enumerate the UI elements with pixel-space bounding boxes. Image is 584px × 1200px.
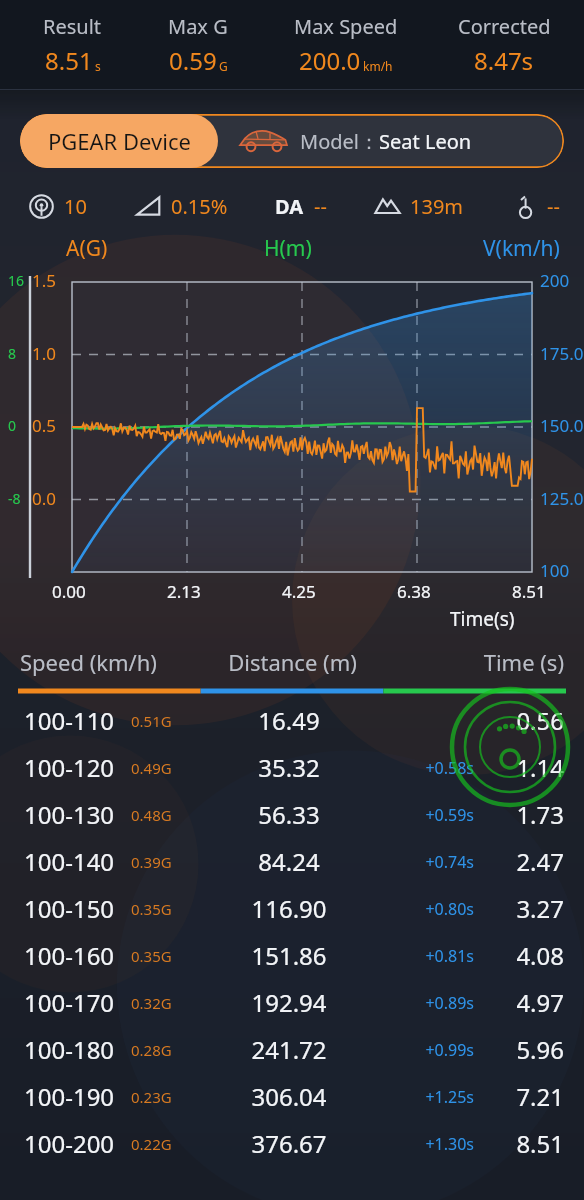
- staticText: 1.73: [490, 798, 564, 831]
- staticText: G: [219, 58, 228, 74]
- staticText: 100-200: [24, 1127, 115, 1160]
- staticText: 2.13: [167, 580, 201, 603]
- button[interactable]: Slope: [135, 193, 228, 220]
- button[interactable]: DA: [275, 193, 327, 220]
- staticText: +0.99s: [406, 1039, 474, 1061]
- staticText: 8.51: [512, 580, 546, 603]
- staticText: 139m: [410, 193, 464, 220]
- staticText: 0.23G: [131, 1087, 172, 1107]
- staticText: s: [95, 58, 101, 74]
- staticText: 125.0: [540, 487, 584, 510]
- staticText: 150.0: [540, 414, 584, 437]
- staticText: 6.38: [397, 580, 431, 603]
- staticText: 0.00: [52, 580, 86, 603]
- staticText: Max Speed: [294, 13, 398, 40]
- staticText: Time(s): [450, 606, 515, 632]
- staticText: 306.04: [226, 1080, 352, 1113]
- staticText: 0.0: [32, 487, 57, 510]
- button[interactable]: 100-200: [0, 1120, 584, 1167]
- staticText: 4.97: [490, 986, 564, 1019]
- staticText: km/h: [363, 58, 393, 74]
- button[interactable]: Max G: [137, 0, 259, 90]
- staticText: 100-110: [24, 704, 115, 737]
- staticText: 1.0: [32, 342, 57, 365]
- staticText: +1.30s: [406, 1133, 474, 1155]
- staticText: 100-120: [24, 751, 115, 784]
- button[interactable]: 100-110: [0, 697, 584, 744]
- staticText: Seat Leon: [379, 128, 472, 155]
- staticText: --: [314, 193, 327, 220]
- button[interactable]: [0, 234, 584, 629]
- staticText: 4.25: [282, 580, 316, 603]
- staticText: Time (s): [383, 647, 564, 677]
- staticText: Result: [43, 13, 102, 40]
- staticText: 0.35G: [131, 899, 172, 919]
- button[interactable]: 100-160: [0, 932, 584, 979]
- staticText: +0.80s: [406, 898, 474, 920]
- staticText: 0.48G: [131, 805, 172, 825]
- staticText: 2.47: [490, 845, 564, 878]
- button[interactable]: 100-120: [0, 744, 584, 791]
- button[interactable]: 100-130: [0, 791, 584, 838]
- staticText: [406, 710, 474, 732]
- staticText: 100-180: [24, 1033, 115, 1066]
- staticText: --: [547, 193, 560, 220]
- staticText: 1.14: [490, 751, 564, 784]
- staticText: 0.35G: [131, 946, 172, 966]
- staticText: 200.0: [299, 44, 361, 77]
- staticText: A(G): [66, 234, 108, 263]
- button[interactable]: 100-180: [0, 1026, 584, 1073]
- staticText: 100-150: [24, 892, 115, 925]
- staticText: 4.08: [490, 939, 564, 972]
- staticText: 8.47s: [474, 44, 534, 77]
- button[interactable]: Temperature: [511, 193, 560, 220]
- staticText: 100-160: [24, 939, 115, 972]
- staticText: +0.81s: [406, 945, 474, 967]
- staticText: 0.59: [169, 44, 217, 77]
- staticText: 1.5: [32, 269, 57, 292]
- button[interactable]: GPS satellites: [28, 193, 87, 220]
- staticText: V(km/h): [483, 234, 560, 263]
- staticText: 3.27: [490, 892, 564, 925]
- staticText: 192.94: [226, 986, 352, 1019]
- button[interactable]: Altitude: [374, 193, 464, 220]
- button[interactable]: Result: [8, 0, 137, 90]
- staticText: 0.22G: [131, 1134, 172, 1154]
- staticText: Max G: [168, 13, 228, 40]
- staticText: 0: [8, 416, 17, 435]
- button[interactable]: PGEAR Device: [20, 114, 218, 168]
- button[interactable]: 100-170: [0, 979, 584, 1026]
- staticText: 100: [540, 559, 570, 582]
- staticText: 7.21: [490, 1080, 564, 1113]
- button[interactable]: 100-190: [0, 1073, 584, 1120]
- staticText: PGEAR Device: [48, 126, 191, 156]
- staticText: 0.39G: [131, 852, 172, 872]
- button[interactable]: 100-140: [0, 838, 584, 885]
- staticText: 116.90: [226, 892, 352, 925]
- button[interactable]: Corrected: [432, 0, 576, 90]
- staticText: 0.5: [32, 414, 57, 437]
- staticText: 8.51: [490, 1127, 564, 1160]
- staticText: 84.24: [226, 845, 352, 878]
- staticText: 16: [8, 271, 25, 290]
- staticText: 16.49: [226, 704, 352, 737]
- button[interactable]: PGEAR Device: [20, 114, 564, 168]
- staticText: Speed (km/h): [20, 647, 202, 677]
- staticText: 5.96: [490, 1033, 564, 1066]
- button[interactable]: 100-150: [0, 885, 584, 932]
- staticText: 0.28G: [131, 1040, 172, 1060]
- staticText: 241.72: [226, 1033, 352, 1066]
- staticText: 0.49G: [131, 758, 172, 778]
- staticText: +1.25s: [406, 1086, 474, 1108]
- staticText: 100-130: [24, 798, 115, 831]
- staticText: 100-170: [24, 986, 115, 1019]
- staticText: H(m): [264, 234, 312, 263]
- staticText: 0.56: [490, 704, 564, 737]
- staticText: -8: [8, 489, 21, 508]
- staticText: +0.58s: [406, 757, 474, 779]
- staticText: Corrected: [458, 13, 551, 40]
- staticText: 35.32: [226, 751, 352, 784]
- staticText: 151.86: [226, 939, 352, 972]
- staticText: 56.33: [226, 798, 352, 831]
- button[interactable]: Max Speed: [259, 0, 432, 90]
